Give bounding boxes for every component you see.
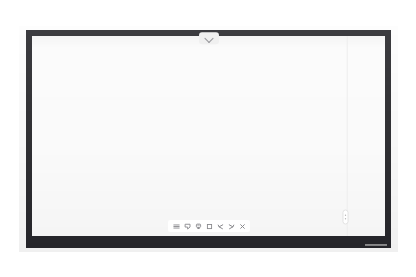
- button[interactable]: Brush: [194, 222, 203, 231]
- button[interactable]: Undo: [216, 222, 225, 231]
- button[interactable]: Open menu: [199, 37, 219, 45]
- button[interactable]: Redo: [227, 222, 236, 231]
- button[interactable]: Eraser: [205, 222, 214, 231]
- button[interactable]: Side panel handle: [343, 210, 348, 224]
- button[interactable]: Note: [183, 222, 192, 231]
- button[interactable]: Menu: [172, 222, 181, 231]
- button[interactable]: Close: [238, 222, 247, 231]
